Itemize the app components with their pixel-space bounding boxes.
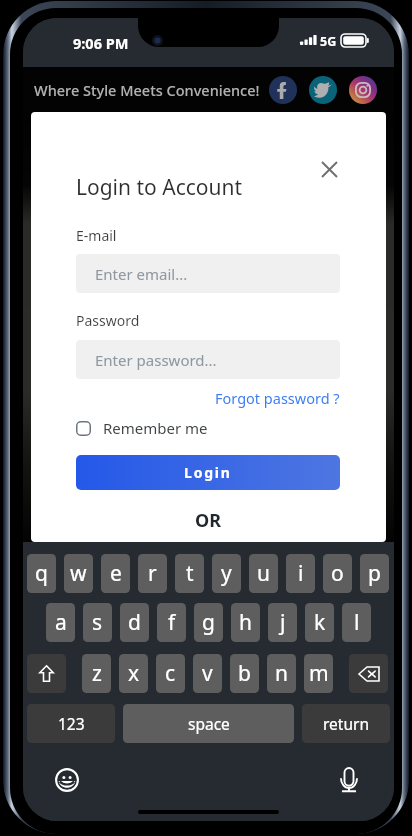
staticText: t (186, 559, 194, 588)
staticText: s (92, 608, 103, 637)
staticText: b (238, 659, 251, 688)
button[interactable]: i (286, 554, 315, 593)
button[interactable]: 123 (27, 704, 115, 743)
button[interactable]: u (249, 554, 278, 593)
button[interactable]: d (120, 603, 149, 642)
staticText: g (202, 608, 215, 637)
button[interactable]: v (193, 654, 222, 693)
button[interactable]: s (83, 603, 112, 642)
staticText: y (221, 559, 232, 588)
button[interactable]: Login (76, 455, 340, 490)
button[interactable]: z (82, 654, 111, 693)
staticText: Login (184, 463, 232, 482)
staticText: f (168, 608, 176, 637)
button[interactable]: b (230, 654, 259, 693)
button[interactable]: o (323, 554, 352, 593)
staticText: u (257, 559, 270, 588)
staticText: w (70, 559, 87, 588)
button[interactable]: p (360, 554, 389, 593)
button[interactable]: Emoji (52, 765, 82, 795)
button[interactable]: y (212, 554, 241, 593)
button[interactable]: Forgot password ? (200, 388, 340, 408)
staticText: a (55, 608, 67, 637)
button[interactable]: return (302, 704, 390, 743)
button[interactable]: g (194, 603, 223, 642)
staticText: Login to Account (76, 173, 243, 202)
staticText: E-mail (76, 226, 117, 245)
staticText: c (165, 659, 176, 688)
staticText: d (128, 608, 141, 637)
staticText: x (128, 659, 140, 688)
button[interactable]: t (175, 554, 204, 593)
staticText: n (275, 659, 288, 688)
staticText: 9:06 PM (73, 33, 129, 53)
button[interactable]: Twitter (309, 76, 337, 104)
button[interactable]: c (156, 654, 185, 693)
staticText: r (148, 559, 157, 588)
button[interactable]: n (267, 654, 296, 693)
button[interactable]: j (268, 603, 297, 642)
staticText: return (323, 713, 369, 734)
staticText: v (202, 659, 213, 688)
staticText: Enter email... (95, 264, 188, 284)
staticText: q (35, 559, 48, 588)
staticText: m (309, 659, 329, 688)
button[interactable]: a (46, 603, 75, 642)
button[interactable]: Close (313, 153, 346, 186)
button[interactable]: w (64, 554, 93, 593)
button[interactable]: Facebook (269, 76, 297, 104)
staticText: j (280, 608, 286, 637)
button[interactable]: m (304, 654, 333, 693)
staticText: l (354, 608, 360, 637)
button[interactable]: space (123, 704, 294, 743)
button[interactable]: Voice input (334, 765, 364, 795)
button[interactable] (349, 654, 388, 693)
staticText: o (331, 559, 344, 588)
staticText: 5G (320, 33, 337, 50)
staticText: i (298, 559, 304, 588)
staticText: Enter password... (95, 350, 217, 370)
button[interactable]: e (101, 554, 130, 593)
button[interactable]: q (27, 554, 56, 593)
button[interactable]: x (119, 654, 148, 693)
button[interactable]: Instagram (349, 76, 377, 104)
staticText: Password (76, 311, 140, 330)
button[interactable]: h (231, 603, 260, 642)
staticText: space (188, 713, 230, 734)
staticText: Where Style Meets Convenience! (34, 80, 260, 100)
button[interactable]: k (305, 603, 334, 642)
button[interactable]: r (138, 554, 167, 593)
staticText: OR (76, 508, 340, 533)
button[interactable]: l (342, 603, 371, 642)
staticText: p (368, 559, 381, 588)
button[interactable]: Enter email... (76, 254, 340, 293)
button[interactable]: Enter password... (76, 340, 340, 379)
button[interactable] (27, 654, 66, 693)
staticText: k (314, 608, 326, 637)
staticText: z (92, 659, 102, 688)
staticText: e (110, 559, 122, 588)
staticText: 123 (58, 713, 85, 734)
button[interactable]: Remember me (76, 416, 208, 440)
button[interactable]: f (157, 603, 186, 642)
staticText: h (239, 608, 252, 637)
staticText: Forgot password ? (215, 388, 340, 408)
staticText: Remember me (103, 418, 208, 438)
